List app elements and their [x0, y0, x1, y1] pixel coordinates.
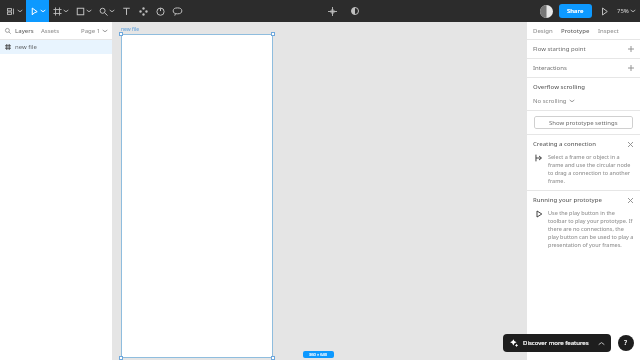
staticText: new file	[121, 26, 140, 33]
button[interactable]: Toggle theme	[348, 4, 362, 18]
button[interactable]: Page 1	[81, 27, 107, 35]
button[interactable]: new file	[0, 40, 112, 54]
button[interactable]: Share	[559, 4, 592, 18]
button[interactable]: No scrolling	[533, 97, 574, 105]
button[interactable]: Show prototype settings	[534, 116, 633, 129]
button[interactable]: Dismiss Running your prototype	[626, 196, 634, 204]
staticText: Show prototype settings	[549, 119, 618, 127]
button[interactable]: Shape tool	[72, 0, 95, 22]
button[interactable]: Frame tool	[49, 0, 72, 22]
staticText: No scrolling	[533, 97, 567, 105]
button[interactable]: Hand tool	[152, 0, 169, 22]
button[interactable]: Discover more features	[503, 334, 611, 352]
button[interactable]: Text tool	[118, 0, 135, 22]
button[interactable]: Layers	[15, 27, 34, 35]
button[interactable]: Move tool	[26, 0, 49, 22]
button[interactable]: Align	[325, 4, 339, 18]
staticText: Use the play button in the toolbar to pl…	[548, 209, 634, 249]
staticText: new file	[15, 43, 37, 51]
button[interactable]: Inspect	[598, 27, 619, 35]
staticText: Interactions	[533, 64, 567, 72]
staticText: 75%	[617, 7, 629, 15]
staticText: Share	[567, 7, 584, 15]
staticText: Running your prototype	[533, 196, 602, 204]
staticText: Overflow scrolling	[533, 83, 585, 91]
button[interactable]: Pen tool	[95, 0, 118, 22]
button[interactable]	[121, 34, 273, 358]
staticText: Creating a connection	[533, 140, 596, 148]
button[interactable]: Prototype	[561, 27, 590, 35]
button[interactable]: Help	[618, 335, 634, 351]
button[interactable]: Components	[135, 0, 152, 22]
button[interactable]: Account	[540, 5, 553, 18]
staticText: ?	[624, 338, 628, 348]
staticText: Flow starting point	[533, 45, 586, 53]
staticText: Select a frame or object in a frame and …	[548, 153, 634, 185]
staticText: Page 1	[81, 27, 101, 35]
button[interactable]: Design	[533, 27, 553, 35]
button[interactable]: Dismiss Creating a connection	[626, 140, 634, 148]
button[interactable]: Interactions	[527, 59, 640, 77]
staticText: Discover more features	[523, 339, 589, 347]
button[interactable]: Main menu	[3, 0, 26, 22]
button[interactable]: Flow starting point	[527, 40, 640, 58]
button[interactable]: 75%	[617, 7, 635, 15]
button[interactable]: Comment	[169, 0, 186, 22]
staticText: 360 × 640	[309, 352, 328, 357]
button[interactable]: Present	[598, 5, 611, 18]
button[interactable]: Assets	[41, 27, 60, 35]
